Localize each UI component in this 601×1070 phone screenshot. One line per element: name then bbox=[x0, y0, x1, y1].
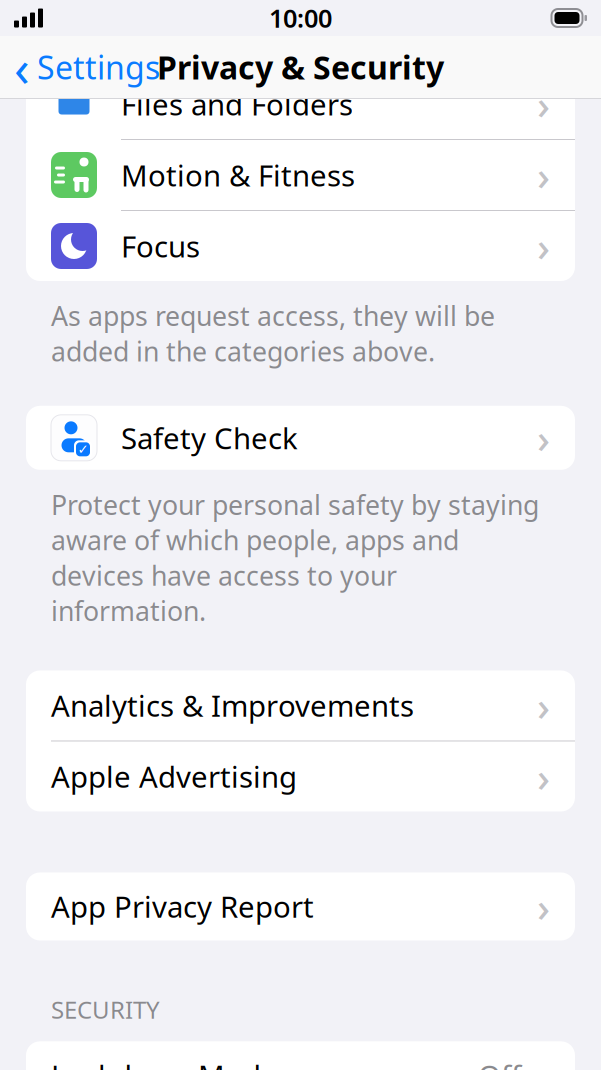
staticText: ✓ bbox=[77, 442, 88, 457]
staticText: › bbox=[537, 679, 550, 732]
staticText: › bbox=[537, 411, 550, 464]
staticText: › bbox=[537, 219, 550, 272]
staticText: Off bbox=[478, 1056, 521, 1070]
staticText: Privacy & Security bbox=[157, 46, 444, 88]
staticText: Motion & Fitness bbox=[121, 155, 355, 194]
staticText: ‹ bbox=[14, 33, 30, 101]
staticText: › bbox=[537, 148, 550, 201]
staticText: Apple Advertising bbox=[51, 757, 297, 796]
button[interactable]: App Privacy Report bbox=[26, 872, 575, 940]
button[interactable]: Lockdown Mode bbox=[26, 1041, 575, 1070]
staticText: SECURITY bbox=[51, 993, 160, 1025]
button[interactable]: Apple Advertising bbox=[26, 741, 575, 811]
staticText: Analytics & Improvements bbox=[51, 686, 414, 725]
staticText: Protect your personal safety by staying … bbox=[51, 487, 539, 628]
button[interactable]: Files and Folders bbox=[26, 69, 575, 139]
button[interactable]: ‹ bbox=[0, 25, 170, 109]
staticText: Files and Folders bbox=[121, 84, 353, 123]
button[interactable]: Motion & Fitness bbox=[26, 140, 575, 210]
staticText: As apps request access, they will be add… bbox=[51, 298, 495, 369]
button[interactable]: ✓ bbox=[26, 406, 575, 470]
staticText: › bbox=[537, 880, 550, 933]
button[interactable]: Analytics & Improvements bbox=[26, 670, 575, 740]
staticText: App Privacy Report bbox=[51, 887, 314, 926]
staticText: › bbox=[537, 77, 550, 130]
staticText: Lockdown Mode bbox=[51, 1056, 278, 1070]
staticText: Focus bbox=[121, 226, 200, 265]
staticText: Safety Check bbox=[121, 418, 298, 457]
staticText: › bbox=[537, 750, 550, 803]
staticText: Settings bbox=[37, 46, 160, 88]
button[interactable]: Focus bbox=[26, 211, 575, 281]
staticText: 10:00 bbox=[269, 1, 332, 35]
